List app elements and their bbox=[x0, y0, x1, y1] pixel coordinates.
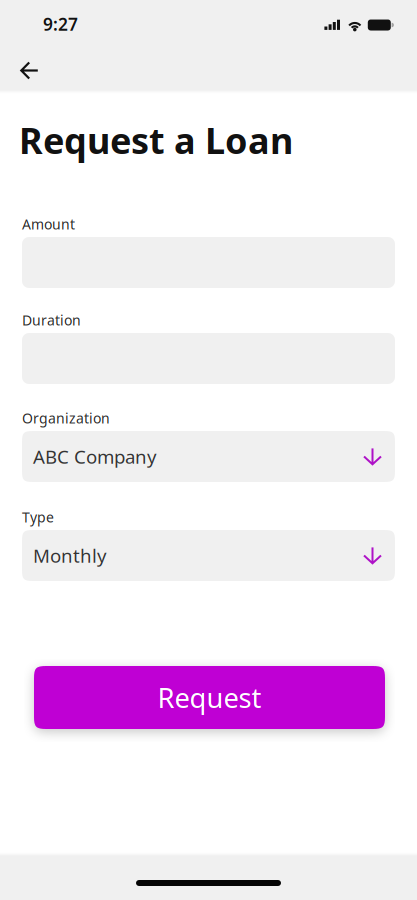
staticText: Duration bbox=[22, 310, 81, 330]
staticText: Type bbox=[22, 507, 54, 527]
button[interactable]: Monthly bbox=[22, 530, 395, 581]
staticText: Monthly bbox=[33, 543, 107, 568]
staticText: ABC Company bbox=[33, 444, 157, 469]
staticText: Request a Loan bbox=[19, 115, 293, 164]
staticText: Request bbox=[157, 679, 261, 716]
button[interactable]: ABC Company bbox=[22, 431, 395, 482]
staticText: Amount bbox=[22, 214, 75, 234]
staticText: Organization bbox=[22, 408, 110, 428]
staticText: 9:27 bbox=[43, 12, 78, 36]
button[interactable]: Request bbox=[34, 666, 385, 729]
button[interactable]: Back bbox=[7, 49, 51, 93]
